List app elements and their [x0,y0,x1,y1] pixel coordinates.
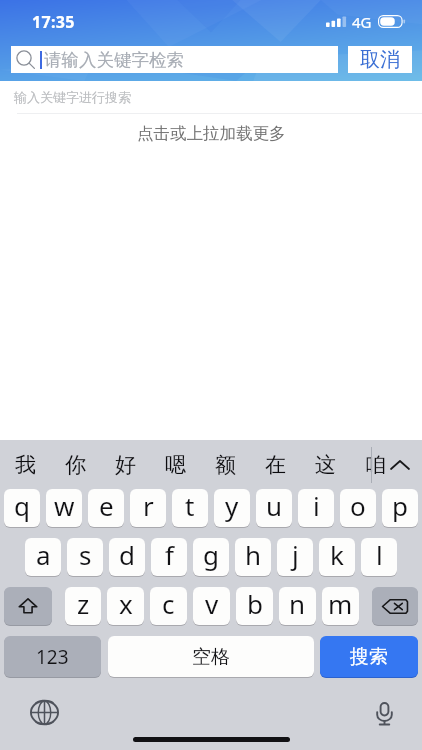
button[interactable]: b [236,587,273,625]
button[interactable]: r [130,489,166,527]
staticText: z [77,587,90,621]
button[interactable]: v [193,587,230,625]
button[interactable]: 空格 [108,636,314,677]
staticText: 输入关键字进行搜索 [14,89,131,105]
button[interactable]: Voice input [362,692,406,736]
staticText: m [328,587,353,621]
button[interactable]: j [277,538,313,576]
button[interactable]: Numbers [4,636,101,677]
staticText: 在 [265,452,286,478]
staticText: 嗯 [165,452,186,478]
staticText: d [119,538,135,572]
button[interactable]: 我 [0,440,50,489]
button[interactable]: u [256,489,292,527]
button[interactable]: s [67,538,103,576]
button[interactable]: i [298,489,334,527]
staticText: 搜索 [350,645,388,669]
button[interactable]: h [235,538,271,576]
staticText: a [36,538,51,572]
staticText: o [350,489,366,523]
button[interactable]: 这 [300,440,350,489]
staticText: b [247,587,263,621]
staticText: 空格 [192,645,230,669]
button[interactable]: z [65,587,101,625]
button[interactable]: 咱 [350,440,400,489]
button[interactable]: 请输入关键字检索 [11,46,338,73]
staticText: 取消 [360,47,400,72]
staticText: r [143,489,154,523]
button[interactable]: 嗯 [150,440,200,489]
staticText: h [245,538,262,572]
button[interactable]: 好 [100,440,150,489]
button[interactable]: 在 [250,440,300,489]
button[interactable]: w [46,489,82,527]
staticText: 17:35 [32,11,75,33]
staticText: t [185,489,195,523]
button[interactable]: o [340,489,376,527]
staticText: 好 [115,452,136,478]
staticText: v [205,587,219,621]
staticText: y [225,489,239,523]
button[interactable]: n [279,587,316,625]
staticText: n [289,587,306,621]
button[interactable]: 取消 [348,46,412,73]
staticText: k [330,538,344,572]
button[interactable]: 搜索 [320,636,418,677]
staticText: c [162,587,175,621]
staticText: g [203,538,219,572]
staticText: l [376,538,383,572]
staticText: e [99,489,114,523]
button[interactable]: e [88,489,124,527]
staticText: 你 [65,452,86,478]
button[interactable]: m [322,587,359,625]
staticText: 4G [352,12,372,32]
staticText: 咱 [365,452,386,478]
button[interactable]: Switch language [22,690,66,734]
button[interactable]: g [193,538,229,576]
button[interactable]: 你 [50,440,100,489]
staticText: 额 [215,452,236,478]
button[interactable]: Delete [372,587,418,625]
staticText: 这 [315,452,336,478]
button[interactable]: l [361,538,397,576]
staticText: q [14,489,30,523]
button[interactable]: x [107,587,144,625]
staticText: 我 [15,452,36,478]
button[interactable]: a [25,538,61,576]
button[interactable]: Shift [4,587,52,625]
staticText: 请输入关键字检索 [44,49,184,71]
button[interactable]: d [109,538,145,576]
staticText: 123 [36,644,69,670]
staticText: u [266,489,283,523]
staticText: j [292,538,299,572]
staticText: i [313,489,320,523]
button[interactable]: 额 [200,440,250,489]
staticText: s [79,538,92,572]
staticText: p [392,489,408,523]
staticText: x [119,587,133,621]
button[interactable]: c [150,587,187,625]
button[interactable]: p [382,489,418,527]
button[interactable]: 点击或上拉加载更多 [0,114,422,152]
button[interactable]: y [214,489,250,527]
button[interactable]: Collapse candidates [378,440,422,489]
button[interactable]: f [151,538,187,576]
button[interactable]: q [4,489,40,527]
button[interactable]: t [172,489,208,527]
staticText: w [54,489,75,523]
button[interactable]: k [319,538,355,576]
staticText: f [165,538,174,572]
staticText: 点击或上拉加载更多 [137,123,286,144]
